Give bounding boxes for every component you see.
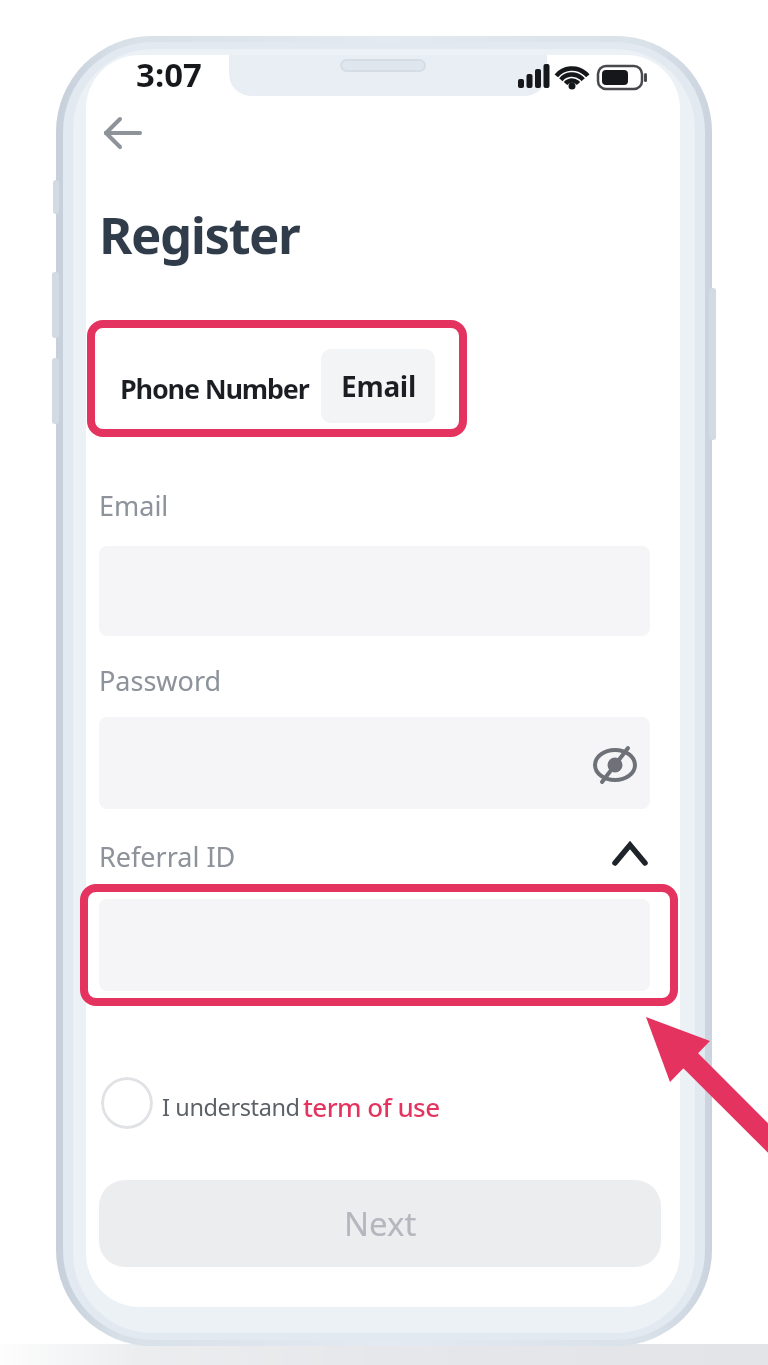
- staticText: I understand: [162, 1091, 300, 1123]
- button[interactable]: [101, 1077, 153, 1129]
- staticText: Register: [99, 199, 300, 268]
- button[interactable]: Phone Number: [120, 370, 309, 407]
- staticText: Next: [344, 1201, 417, 1246]
- button[interactable]: [96, 108, 152, 158]
- button[interactable]: [608, 834, 652, 874]
- staticText: Referral ID: [99, 838, 236, 875]
- staticText: Email: [341, 367, 416, 405]
- button[interactable]: Email: [321, 349, 435, 423]
- button[interactable]: term of use: [303, 1089, 440, 1124]
- button[interactable]: Next: [99, 1180, 661, 1267]
- staticText: Email: [99, 487, 169, 524]
- staticText: Password: [99, 662, 222, 699]
- button[interactable]: [99, 717, 650, 809]
- button[interactable]: [592, 742, 638, 788]
- staticText: 3:07: [136, 52, 202, 97]
